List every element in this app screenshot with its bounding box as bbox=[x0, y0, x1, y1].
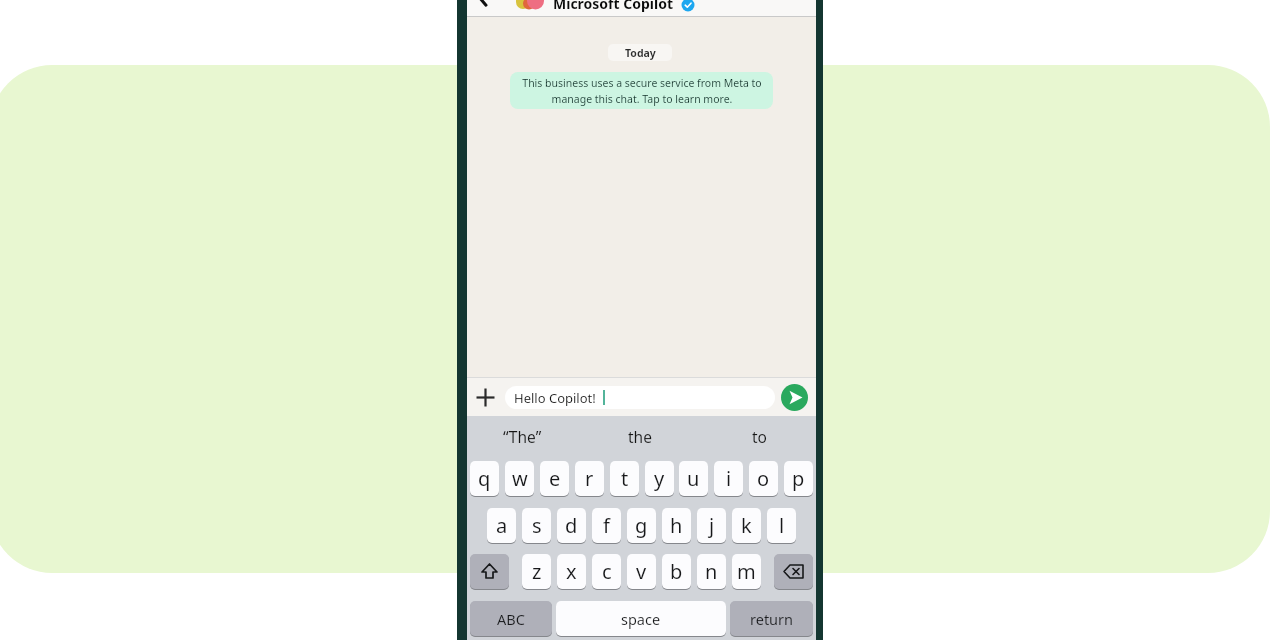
button[interactable]: the bbox=[610, 425, 670, 447]
button[interactable]: j bbox=[697, 508, 726, 543]
staticText: p bbox=[792, 465, 805, 492]
staticText: d bbox=[565, 512, 578, 539]
staticText: k bbox=[741, 512, 752, 539]
button[interactable]: space bbox=[556, 601, 726, 636]
staticText: Microsoft Copilot bbox=[553, 0, 674, 13]
staticText: space bbox=[621, 609, 661, 629]
staticText: e bbox=[549, 465, 561, 492]
button[interactable] bbox=[470, 554, 509, 589]
button[interactable]: Today bbox=[608, 44, 672, 61]
button[interactable]: p bbox=[784, 461, 813, 496]
staticText: x bbox=[566, 558, 577, 585]
staticText: z bbox=[532, 558, 542, 585]
staticText: t bbox=[621, 465, 629, 492]
button[interactable]: i bbox=[714, 461, 743, 496]
staticText: r bbox=[585, 465, 594, 492]
staticText: h bbox=[670, 512, 683, 539]
button[interactable]: w bbox=[505, 461, 534, 496]
button[interactable]: x bbox=[557, 554, 586, 589]
staticText: b bbox=[670, 558, 683, 585]
button[interactable]: to bbox=[729, 425, 789, 447]
button[interactable]: r bbox=[575, 461, 604, 496]
staticText: s bbox=[532, 512, 542, 539]
button[interactable]: u bbox=[679, 461, 708, 496]
button[interactable]: d bbox=[557, 508, 586, 543]
button[interactable]: a bbox=[487, 508, 516, 543]
button[interactable]: o bbox=[749, 461, 778, 496]
staticText: n bbox=[705, 558, 718, 585]
staticText: w bbox=[512, 465, 528, 492]
staticText: y bbox=[654, 465, 665, 492]
button[interactable] bbox=[505, 386, 775, 409]
button[interactable]: “The” bbox=[492, 425, 552, 447]
staticText: to bbox=[752, 426, 767, 447]
staticText: “The” bbox=[503, 426, 542, 447]
button[interactable]: c bbox=[592, 554, 621, 589]
button[interactable]: b bbox=[662, 554, 691, 589]
staticText: Hello Copilot! bbox=[514, 389, 596, 407]
button[interactable]: v bbox=[627, 554, 656, 589]
button[interactable]: g bbox=[627, 508, 656, 543]
staticText: j bbox=[709, 512, 715, 539]
staticText: g bbox=[635, 512, 648, 539]
staticText: f bbox=[603, 512, 610, 539]
button[interactable]: y bbox=[645, 461, 674, 496]
button[interactable] bbox=[475, 387, 496, 408]
button[interactable]: ABC bbox=[470, 601, 552, 636]
staticText: return bbox=[750, 609, 794, 629]
button[interactable]: t bbox=[610, 461, 639, 496]
button[interactable] bbox=[781, 384, 808, 411]
staticText: the bbox=[628, 426, 652, 447]
staticText: Today bbox=[625, 46, 656, 60]
button[interactable]: e bbox=[540, 461, 569, 496]
button[interactable]: h bbox=[662, 508, 691, 543]
button[interactable]: z bbox=[522, 554, 551, 589]
button[interactable]: q bbox=[470, 461, 499, 496]
staticText: c bbox=[602, 558, 612, 585]
staticText: ABC bbox=[497, 609, 525, 629]
button[interactable]: k bbox=[732, 508, 761, 543]
staticText: This business uses a secure service from… bbox=[522, 76, 762, 106]
staticText: m bbox=[737, 558, 756, 585]
staticText: u bbox=[687, 465, 700, 492]
button[interactable]: s bbox=[522, 508, 551, 543]
staticText: q bbox=[478, 465, 491, 492]
staticText: o bbox=[757, 465, 770, 492]
button[interactable]: f bbox=[592, 508, 621, 543]
button[interactable]: l bbox=[767, 508, 796, 543]
staticText: v bbox=[636, 558, 647, 585]
button[interactable]: This business uses a secure service from… bbox=[510, 72, 773, 109]
button[interactable]: m bbox=[732, 554, 761, 589]
staticText: a bbox=[496, 512, 508, 539]
staticText: i bbox=[726, 465, 732, 492]
button[interactable]: return bbox=[730, 601, 813, 636]
button[interactable]: n bbox=[697, 554, 726, 589]
staticText: l bbox=[779, 512, 785, 539]
button[interactable] bbox=[774, 554, 813, 589]
